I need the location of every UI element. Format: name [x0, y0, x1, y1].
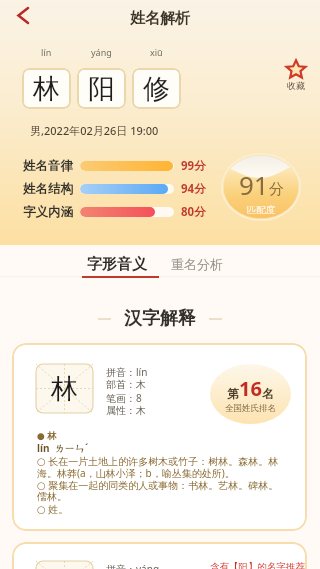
staticText: 部首：木: [106, 378, 146, 391]
staticText: 91: [239, 167, 269, 202]
staticText: 16: [239, 375, 262, 402]
button[interactable]: 字形音义: [87, 255, 147, 274]
staticText: 拼音：yáng: [106, 562, 160, 569]
staticText: 含有【阳】的名字推荐>>: [210, 560, 307, 569]
staticText: ○ 长在一片土地上的许多树木或竹子：树林。森林。林: [37, 454, 279, 468]
staticText: 汉字解释: [124, 307, 196, 330]
button[interactable]: 修: [132, 68, 181, 109]
staticText: yáng: [91, 46, 112, 58]
staticText: 字形音义: [87, 255, 147, 274]
staticText: 姓名结构: [23, 181, 80, 197]
staticText: 第: [227, 386, 239, 401]
staticText: 80分: [181, 204, 206, 220]
staticText: 姓名解析: [130, 9, 190, 28]
staticText: 重名分析: [171, 256, 223, 272]
staticText: 名: [262, 386, 274, 401]
staticText: 94分: [181, 181, 206, 197]
staticText: 匹配度: [247, 204, 276, 216]
staticText: ● 林: [37, 429, 57, 441]
staticText: 99分: [181, 158, 206, 174]
staticText: 林: [51, 372, 78, 406]
staticText: 姓名音律: [23, 158, 80, 174]
staticText: ○ 聚集在一起的同类的人或事物：书林。艺林。碑林。: [37, 478, 279, 492]
staticText: 全国姓氏排名: [225, 403, 276, 414]
staticText: 林: [33, 72, 60, 106]
staticText: lín: [41, 46, 52, 58]
button[interactable]: Back: [6, 0, 40, 30]
staticText: 海。林莽(a，山林小泽；b，喻丛集的处所)。: [37, 466, 235, 480]
staticText: 字义内涵: [23, 204, 80, 220]
staticText: xiū: [150, 46, 163, 58]
button[interactable]: 阳: [77, 68, 126, 109]
staticText: lín ㄌㄧㄣˊ: [37, 441, 89, 455]
staticText: 分: [269, 180, 284, 199]
button[interactable]: 收藏: [284, 61, 308, 91]
button[interactable]: 林: [22, 68, 71, 109]
button[interactable]: 重名分析: [171, 256, 223, 272]
staticText: 修: [143, 72, 170, 106]
button[interactable]: 林: [12, 343, 307, 531]
staticText: 阳: [88, 72, 115, 106]
staticText: ○ 姓。: [37, 502, 69, 516]
staticText: 收藏: [287, 80, 305, 91]
staticText: 属性：木: [106, 404, 146, 417]
button[interactable]: 阳: [12, 542, 307, 569]
staticText: 男,2022年02月26日 19:00: [30, 123, 159, 138]
staticText: 拼音：lín: [106, 365, 148, 378]
staticText: 笔画：8: [106, 391, 142, 404]
staticText: 儒林。: [37, 490, 67, 503]
button[interactable]: 含有【阳】的名字推荐>>: [210, 560, 307, 569]
